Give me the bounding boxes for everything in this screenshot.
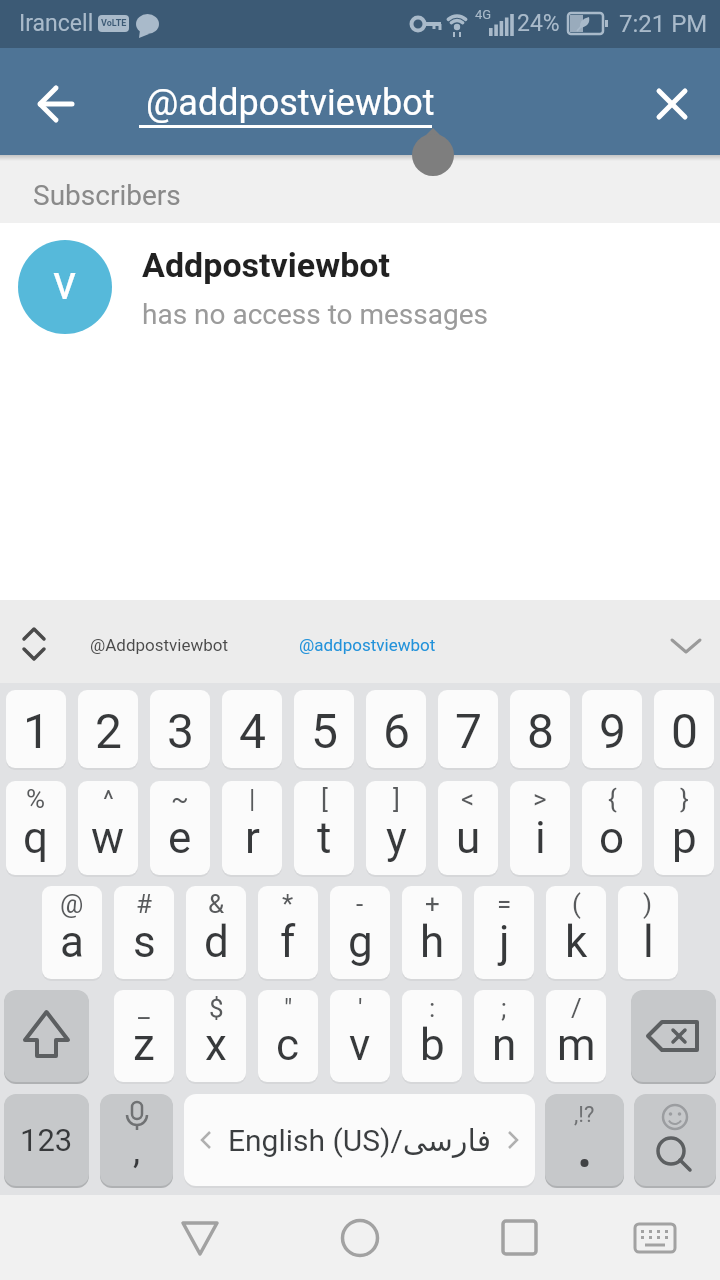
staticText: v [349, 1019, 371, 1071]
staticText: + [425, 889, 440, 919]
button[interactable]: , [100, 1094, 173, 1186]
staticText: e [168, 812, 192, 864]
staticText: 6 [383, 703, 410, 759]
button[interactable]: ' [330, 990, 390, 1082]
button[interactable]: 1 [6, 690, 66, 768]
staticText: c [276, 1019, 300, 1071]
button[interactable] [328, 1205, 392, 1269]
staticText: u [456, 812, 481, 864]
staticText: ( [572, 889, 581, 919]
button[interactable] [631, 990, 716, 1082]
button[interactable]: $ [186, 990, 246, 1082]
button[interactable] [623, 1205, 687, 1269]
staticText: ,!? [574, 1102, 595, 1128]
staticText: f [280, 916, 296, 968]
staticText: ; [501, 993, 507, 1023]
staticText: 1 [23, 703, 50, 759]
button[interactable]: _ [114, 990, 174, 1082]
button[interactable]: # [114, 886, 174, 979]
button[interactable]: 4 [222, 690, 282, 768]
button[interactable]: @ [42, 886, 102, 979]
staticText: ] [393, 784, 400, 814]
staticText: s [133, 916, 156, 968]
staticText: a [60, 916, 84, 968]
button[interactable]: 8 [510, 690, 570, 768]
button[interactable]: v [0, 223, 720, 351]
button[interactable]: % [6, 781, 66, 875]
button[interactable]: 2 [78, 690, 138, 768]
button[interactable]: { [582, 781, 642, 875]
staticText: @ [60, 889, 84, 919]
button[interactable]: 5 [294, 690, 354, 768]
staticText: j [499, 916, 510, 968]
button[interactable]: ] [366, 781, 426, 875]
button[interactable]: 9 [582, 690, 642, 768]
button[interactable]: / [546, 990, 606, 1082]
button[interactable]: 6 [366, 690, 426, 768]
button[interactable] [4, 990, 89, 1082]
button[interactable]: ~ [150, 781, 210, 875]
staticText: p [672, 812, 697, 864]
button[interactable]: 7 [438, 690, 498, 768]
button[interactable]: ( [546, 886, 606, 979]
button[interactable]: ,!? [545, 1094, 624, 1186]
staticText: 8 [527, 703, 554, 759]
button[interactable] [634, 1094, 716, 1186]
button[interactable]: ; [474, 990, 534, 1082]
staticText: % [26, 784, 46, 814]
button[interactable] [644, 76, 700, 132]
button[interactable]: 123 [4, 1094, 89, 1186]
button[interactable] [293, 620, 443, 664]
button[interactable]: > [510, 781, 570, 875]
staticText: r [245, 812, 260, 864]
button[interactable] [84, 620, 234, 664]
staticText: 3 [167, 703, 194, 759]
staticText: Addpostviewbot [142, 245, 391, 285]
staticText: b [420, 1019, 445, 1071]
button[interactable]: English (US)/فارسی [184, 1094, 535, 1186]
staticText: d [204, 916, 229, 968]
staticText: t [317, 812, 332, 864]
staticText: Subscribers [33, 179, 181, 212]
button[interactable]: [ [294, 781, 354, 875]
staticText: 24% [517, 10, 560, 37]
staticText: h [420, 916, 445, 968]
staticText: 4 [239, 703, 266, 759]
button[interactable]: 0 [654, 690, 714, 768]
staticText: # [136, 889, 153, 919]
button[interactable] [488, 1205, 552, 1269]
button[interactable]: 3 [150, 690, 210, 768]
button[interactable]: & [186, 886, 246, 979]
staticText: i [535, 812, 546, 864]
staticText: ~ [171, 784, 189, 814]
staticText: v [53, 254, 77, 310]
staticText: q [23, 812, 49, 864]
button[interactable]: * [258, 886, 318, 979]
staticText: 0 [671, 703, 698, 759]
button[interactable]: ^ [78, 781, 138, 875]
staticText: y [386, 812, 407, 864]
staticText: @Addpostviewbot [90, 635, 229, 655]
button[interactable]: < [438, 781, 498, 875]
staticText: m [557, 1019, 596, 1071]
staticText: ) [643, 889, 653, 919]
button[interactable]: | [222, 781, 282, 875]
staticText: _ [138, 993, 150, 1023]
staticText: : [429, 993, 436, 1023]
staticText: n [492, 1019, 517, 1071]
staticText: [ [321, 784, 328, 814]
staticText: o [599, 812, 625, 864]
button[interactable] [28, 76, 84, 132]
button[interactable]: = [474, 886, 534, 979]
button[interactable]: : [402, 990, 462, 1082]
button[interactable]: - [330, 886, 390, 979]
staticText: k [565, 916, 588, 968]
button[interactable]: + [402, 886, 462, 979]
button[interactable] [168, 1205, 232, 1269]
staticText: English (US)/فارسی [228, 1123, 491, 1158]
staticText: 2 [95, 703, 122, 759]
button[interactable]: } [654, 781, 714, 875]
button[interactable]: " [258, 990, 318, 1082]
staticText: l [643, 916, 654, 968]
button[interactable]: ) [618, 886, 678, 979]
